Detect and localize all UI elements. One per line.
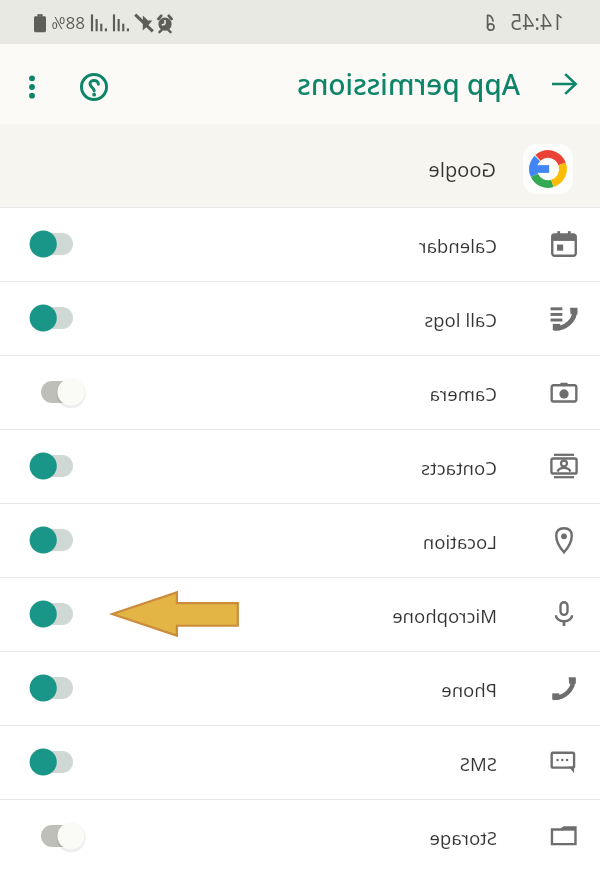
button[interactable]: Help <box>70 63 118 111</box>
staticText: Microphone <box>392 603 497 628</box>
staticText: Google <box>428 156 496 183</box>
button[interactable]: Call logs <box>0 281 600 355</box>
button[interactable]: Call logs permission <box>18 296 94 340</box>
button[interactable]: More options <box>8 63 56 111</box>
staticText: SMS <box>459 751 497 776</box>
button[interactable]: Calendar <box>0 207 600 281</box>
button[interactable]: Phone <box>0 651 600 725</box>
staticText: 14:45 <box>510 8 564 37</box>
button[interactable]: Camera permission <box>18 370 94 414</box>
button[interactable]: Storage <box>0 799 600 872</box>
staticText: Storage <box>429 825 497 850</box>
staticText: Location <box>422 529 497 554</box>
button[interactable]: SMS permission <box>18 740 94 784</box>
button[interactable]: Contacts permission <box>18 444 94 488</box>
button[interactable]: Location permission <box>18 518 94 562</box>
staticText: Calendar <box>418 233 497 258</box>
staticText: Contacts <box>421 455 497 480</box>
button[interactable]: Phone permission <box>18 666 94 710</box>
button[interactable]: Contacts <box>0 429 600 503</box>
button[interactable]: Microphone permission <box>18 592 94 636</box>
button[interactable]: Calendar permission <box>18 222 94 266</box>
staticText: Camera <box>429 381 497 406</box>
button[interactable]: Camera <box>0 355 600 429</box>
button[interactable]: Microphone <box>0 577 600 651</box>
staticText: Phone <box>441 677 497 702</box>
staticText: 88% <box>51 11 85 34</box>
staticText: App permissions <box>297 65 520 103</box>
staticText: Call logs <box>424 307 497 332</box>
button[interactable]: SMS <box>0 725 600 799</box>
button[interactable]: Location <box>0 503 600 577</box>
button[interactable]: Back <box>538 58 590 110</box>
button[interactable]: Storage permission <box>18 814 94 858</box>
